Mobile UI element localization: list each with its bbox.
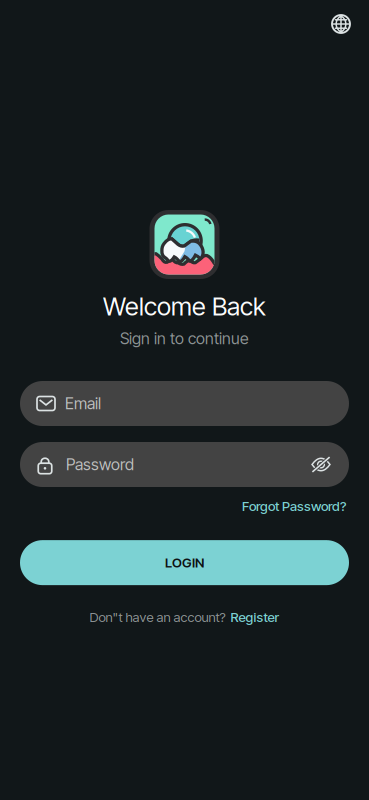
staticText: Welcome Back <box>103 291 266 322</box>
staticText: Sign in to continue <box>120 329 249 348</box>
button[interactable]: Email <box>20 381 349 426</box>
button[interactable]: Forgot Password? <box>242 495 346 517</box>
staticText: Register <box>230 609 279 625</box>
staticText: Don"t have an account? <box>89 609 225 625</box>
button[interactable]: Language <box>323 6 359 42</box>
staticText: LOGIN <box>165 555 204 571</box>
button[interactable]: Register <box>230 609 279 625</box>
button[interactable]: Show password <box>311 456 331 472</box>
staticText: Email <box>65 394 101 413</box>
button[interactable]: Password <box>20 442 349 487</box>
staticText: Forgot Password? <box>242 498 346 514</box>
staticText: Password <box>66 455 134 474</box>
button[interactable]: LOGIN <box>20 540 349 585</box>
